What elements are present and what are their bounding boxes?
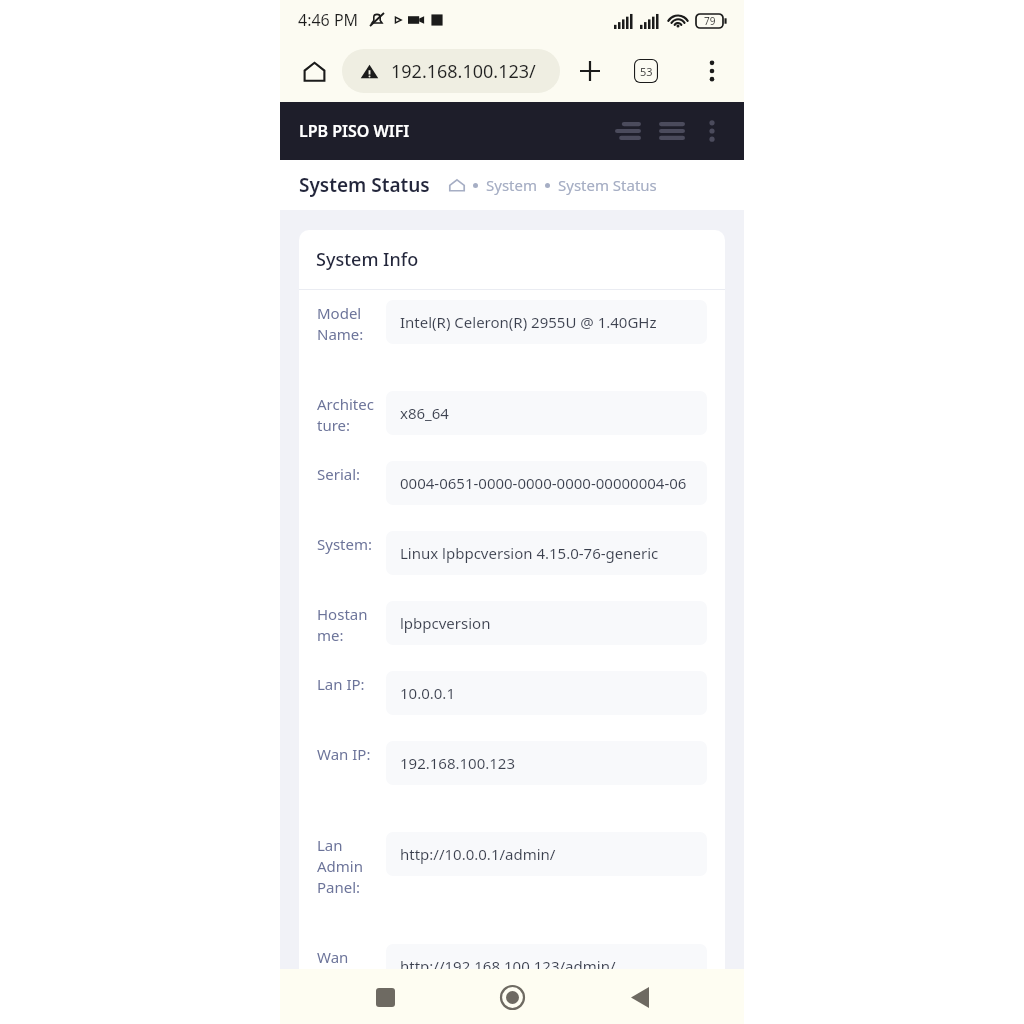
button[interactable]: http://192.168.100.123/admin/ (386, 944, 707, 988)
staticText: Linux lpbpcversion 4.15.0-76-generic #86… (400, 543, 693, 563)
staticText: System: (317, 534, 372, 554)
staticText: Lan Admin Panel: (317, 835, 379, 898)
button[interactable]: http://10.0.0.1/admin/ (386, 832, 707, 876)
button[interactable]: Home (489, 974, 535, 1020)
staticText: Hostanme: (317, 604, 379, 646)
button[interactable]: System (486, 175, 537, 195)
staticText: 192.168.100.123 (400, 753, 516, 773)
staticText: Intel(R) Celeron(R) 2955U @ 1.40GHz (400, 312, 657, 332)
staticText: Model Name: (317, 303, 379, 345)
staticText: 4:46 PM (298, 9, 359, 31)
button[interactable]: Menu (652, 111, 692, 151)
staticText: LPB PISO WIFI (299, 120, 410, 142)
staticText: System Status (558, 175, 657, 195)
staticText: http://192.168.100.123/admin/ (400, 956, 616, 976)
staticText: http://10.0.0.1/admin/ (400, 844, 556, 864)
button[interactable]: New tab (568, 49, 612, 93)
staticText: Wan IP: (317, 744, 371, 764)
staticText: 79 (704, 14, 716, 28)
staticText: 192.168.100.123/adr (391, 59, 560, 84)
button[interactable]: Home (294, 51, 334, 91)
staticText: 10.0.0.1 (400, 683, 455, 703)
button[interactable]: More options (690, 49, 734, 93)
button[interactable]: Linux lpbpcversion 4.15.0-76-generic #86… (386, 531, 707, 575)
staticText: System Info (316, 247, 419, 272)
staticText: Wan Admin Panel: (317, 947, 379, 1010)
staticText: Lan IP: (317, 674, 365, 694)
staticText: Serial: (317, 464, 361, 484)
button[interactable]: Tabs: 53 (624, 49, 668, 93)
button[interactable]: More (694, 113, 730, 149)
button[interactable]: lpbpcversion (386, 601, 707, 645)
button[interactable]: 192.168.100.123 (386, 741, 707, 785)
button[interactable]: 192.168.100.123/adr (342, 49, 560, 93)
button[interactable]: Intel(R) Celeron(R) 2955U @ 1.40GHz (386, 300, 707, 344)
staticText: 53 (640, 64, 653, 79)
button[interactable]: Back (617, 974, 663, 1020)
button[interactable]: Recent apps (362, 974, 408, 1020)
staticText: Architecture: (317, 394, 379, 436)
staticText: System Status (299, 172, 430, 198)
button[interactable]: 0004-0651-0000-0000-0000-00000004-06 (386, 461, 707, 505)
button[interactable]: Toggle sidebar (608, 111, 648, 151)
staticText: 0004-0651-0000-0000-0000-00000004-06 (400, 473, 687, 493)
button[interactable]: 10.0.0.1 (386, 671, 707, 715)
staticText: x86_64 (400, 403, 449, 423)
button[interactable]: x86_64 (386, 391, 707, 435)
staticText: lpbpcversion (400, 613, 491, 633)
